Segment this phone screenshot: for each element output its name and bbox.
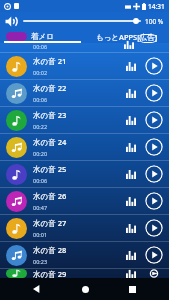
staticText: 100 % — [145, 17, 164, 26]
button[interactable]: 水の音 23 — [0, 107, 169, 133]
button[interactable]: 00:06 — [0, 43, 169, 52]
button[interactable]: Equalizer — [123, 269, 139, 278]
staticText: 00:06 — [33, 96, 48, 103]
staticText: 水の音 28 — [33, 245, 67, 255]
button[interactable]: Play — [145, 57, 163, 75]
button[interactable]: Play — [145, 111, 163, 129]
button[interactable]: 水の音 25 — [0, 161, 169, 187]
staticText: 14:31 — [148, 2, 165, 11]
button[interactable]: 着メロ — [0, 30, 84, 43]
staticText: 00:47 — [33, 204, 48, 211]
staticText: 00:01 — [33, 231, 48, 238]
button[interactable]: 水の音 28 — [0, 242, 169, 268]
button[interactable]: Recents — [121, 278, 143, 300]
button[interactable]: 水の音 26 — [0, 188, 169, 214]
staticText: 水の音 21 — [33, 56, 67, 66]
staticText: 水の音 29 — [33, 269, 67, 278]
button[interactable]: Equalizer — [123, 247, 139, 263]
button[interactable]: もっとAPPS[広告] — [84, 30, 169, 43]
staticText: 00:02 — [33, 69, 48, 76]
button[interactable]: Play — [145, 165, 163, 183]
button[interactable]: 水の音 27 — [0, 215, 169, 241]
staticText: 水の音 25 — [33, 164, 67, 174]
staticText: 水の音 22 — [33, 83, 67, 93]
button[interactable]: Play — [145, 192, 163, 210]
button[interactable]: 水の音 22 — [0, 80, 169, 106]
staticText: もっとAPPS[広告] — [96, 32, 158, 42]
button[interactable]: Play — [145, 84, 163, 102]
staticText: 着メロ — [31, 32, 54, 41]
button[interactable]: Equalizer — [123, 112, 139, 128]
button[interactable]: Back — [26, 278, 48, 300]
button[interactable]: Equalizer — [123, 58, 139, 74]
button[interactable] — [23, 15, 141, 27]
button[interactable]: 水の音 24 — [0, 134, 169, 160]
staticText: 00:22 — [33, 123, 48, 130]
button[interactable]: Play — [145, 246, 163, 264]
button[interactable]: Home — [74, 278, 96, 300]
button[interactable]: Equalizer — [123, 85, 139, 101]
button[interactable]: 水の音 21 — [0, 53, 169, 79]
staticText: 00:23 — [33, 258, 48, 265]
other: Volume — [5, 15, 18, 28]
button[interactable]: Equalizer — [123, 166, 139, 182]
staticText: 00:20 — [33, 150, 48, 157]
staticText: 00:06 — [33, 177, 48, 184]
button[interactable]: 水の音 29 — [0, 269, 169, 278]
staticText: 水の音 23 — [33, 110, 67, 120]
button[interactable]: Play — [145, 138, 163, 156]
button[interactable]: Equalizer — [123, 220, 139, 236]
button[interactable]: Equalizer — [123, 193, 139, 209]
button[interactable]: Play — [145, 269, 163, 278]
staticText: 水の音 27 — [33, 218, 67, 228]
staticText: 00:06 — [33, 43, 48, 50]
staticText: 水の音 26 — [33, 191, 67, 201]
button[interactable]: Equalizer — [123, 139, 139, 155]
staticText: 水の音 24 — [33, 137, 67, 147]
button[interactable]: Play — [145, 219, 163, 237]
